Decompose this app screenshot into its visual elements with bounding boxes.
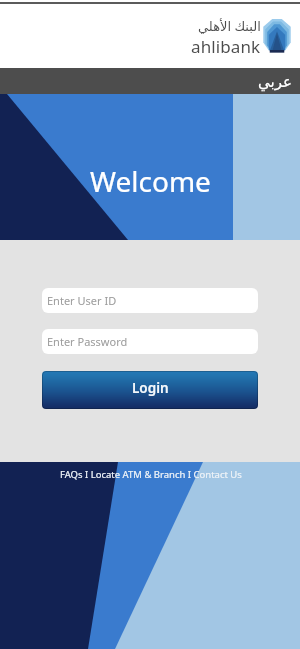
button[interactable]: Login: [42, 371, 258, 409]
button[interactable]: Enter User ID: [42, 288, 258, 313]
staticText: ahlibank: [191, 35, 261, 58]
staticText: البنك الأهلي: [198, 17, 261, 35]
staticText: Enter User ID: [47, 293, 117, 308]
staticText: Login: [132, 379, 169, 397]
button[interactable]: Enter Password: [42, 329, 258, 354]
staticText: عربي: [258, 73, 292, 90]
staticText: Enter Password: [47, 334, 128, 349]
button[interactable]: FAQs I Locate ATM & Branch I Contact Us: [60, 468, 242, 481]
button[interactable]: عربي: [0, 68, 300, 94]
staticText: Welcome: [90, 162, 211, 200]
